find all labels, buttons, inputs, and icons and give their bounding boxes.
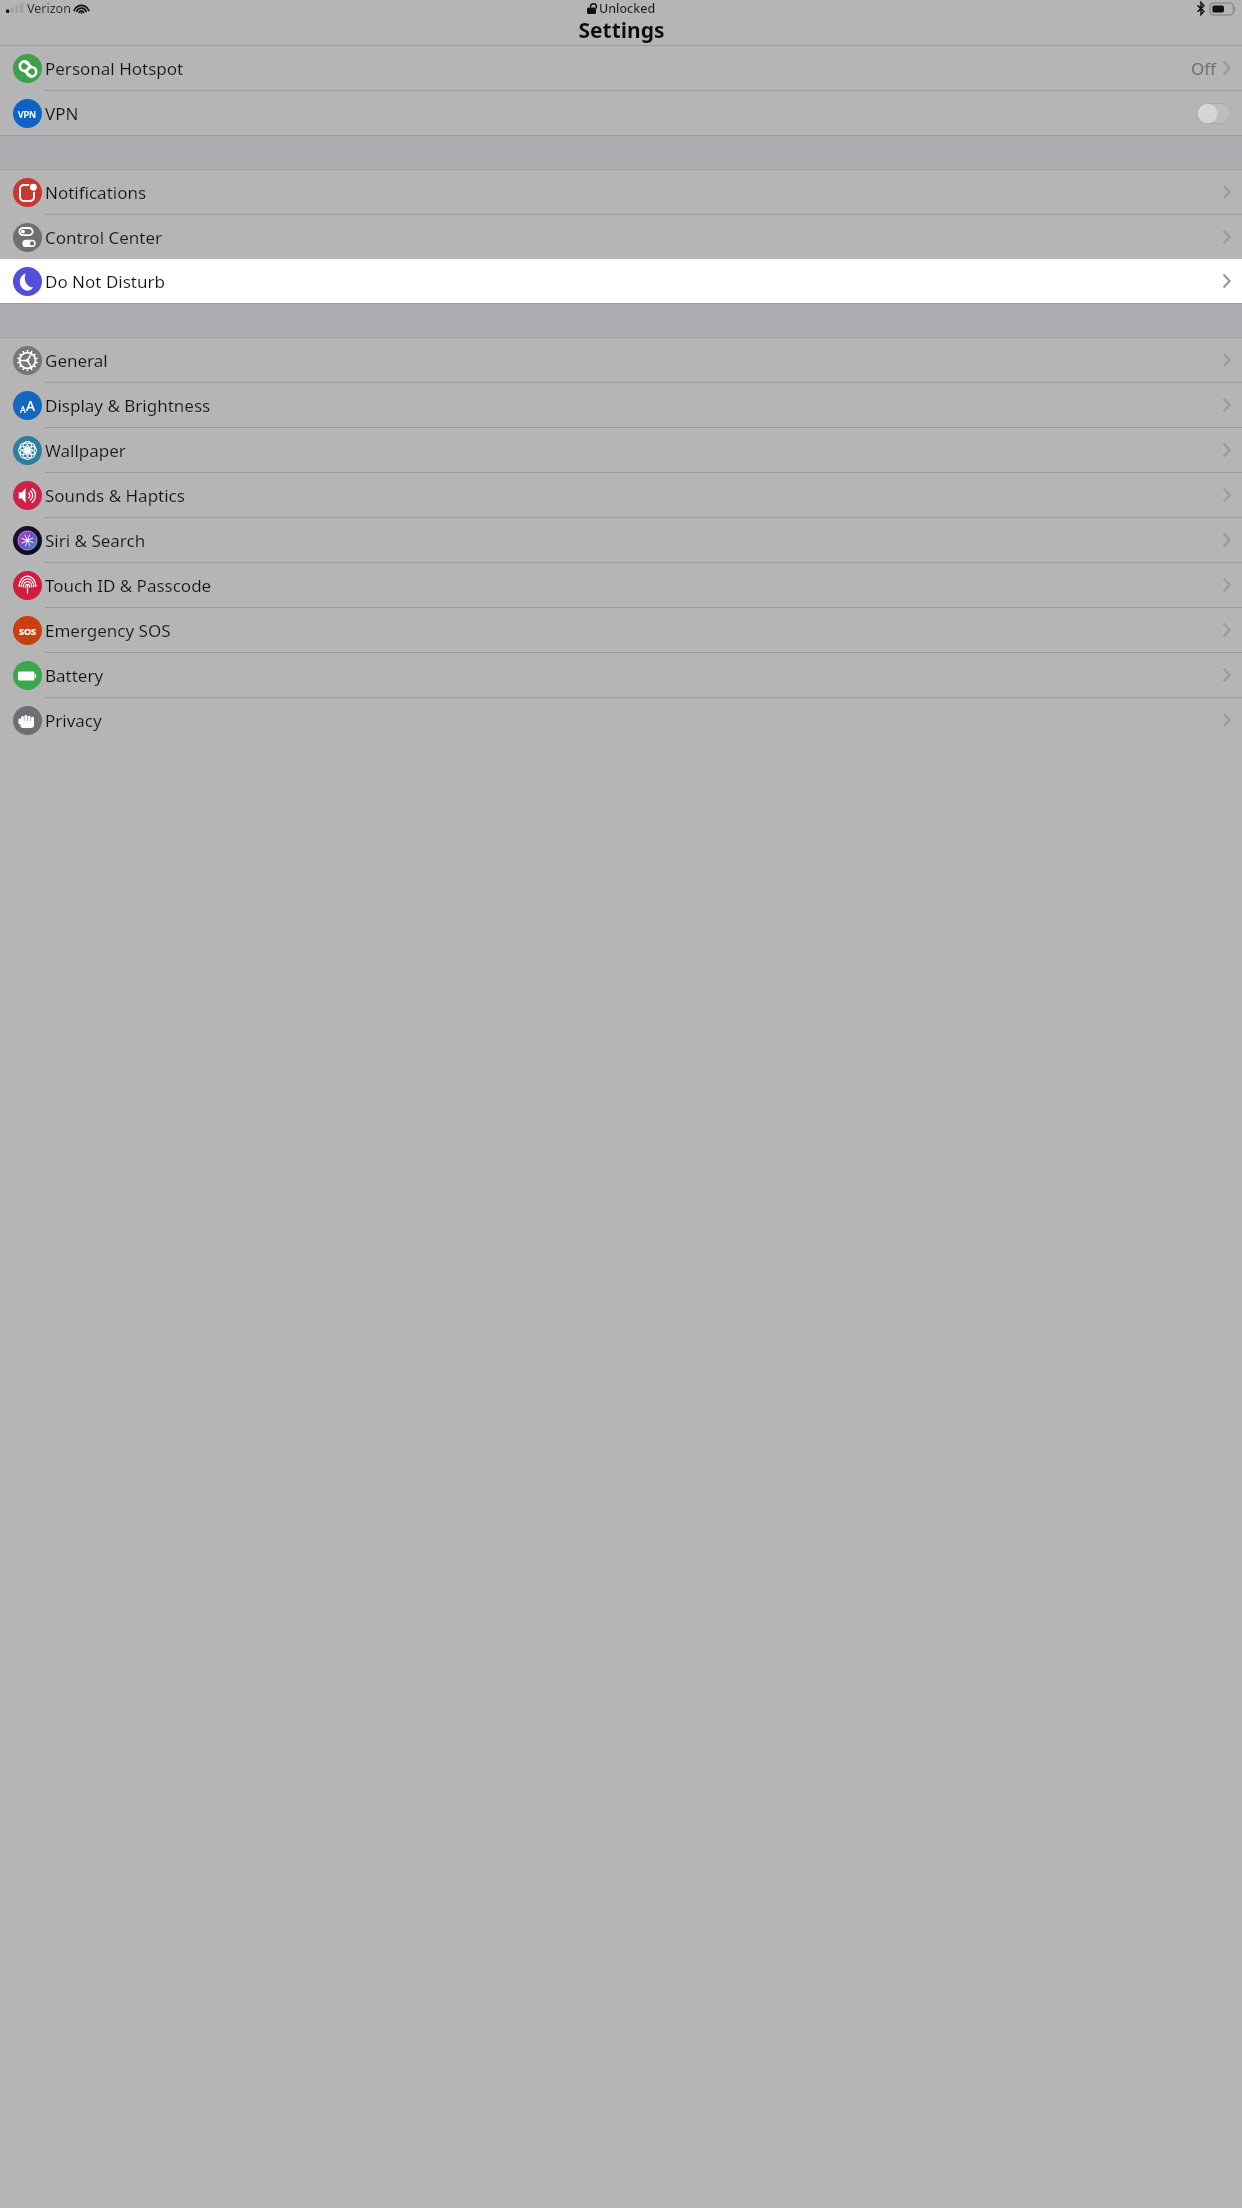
- staticText: A: [26, 396, 35, 415]
- button[interactable]: Battery: [0, 653, 1242, 697]
- staticText: Emergency SOS: [45, 619, 171, 642]
- button[interactable]: Touch ID & Passcode: [0, 563, 1242, 607]
- button[interactable]: Do Not Disturb: [0, 259, 1242, 303]
- staticText: VPN: [18, 108, 37, 120]
- staticText: Display & Brightness: [45, 394, 211, 417]
- staticText: Unlocked: [599, 0, 656, 16]
- staticText: Do Not Disturb: [45, 270, 165, 293]
- button[interactable]: Notifications: [0, 170, 1242, 214]
- staticText: Privacy: [45, 709, 102, 732]
- staticText: Verizon: [27, 0, 71, 16]
- staticText: Settings: [578, 16, 665, 45]
- staticText: VPN: [45, 102, 79, 125]
- staticText: Siri & Search: [45, 529, 146, 552]
- button[interactable]: Wallpaper: [0, 428, 1242, 472]
- button[interactable]: SOS: [0, 608, 1242, 652]
- staticText: A: [20, 403, 26, 415]
- button[interactable]: Siri & Search: [0, 518, 1242, 562]
- button[interactable]: A: [0, 383, 1242, 427]
- button[interactable]: VPN: [0, 91, 1242, 135]
- staticText: Battery: [45, 664, 104, 687]
- button[interactable]: General: [0, 338, 1242, 382]
- button[interactable]: Privacy: [0, 698, 1242, 742]
- button[interactable]: VPN toggle, off: [1197, 103, 1231, 124]
- button[interactable]: Personal Hotspot: [0, 46, 1242, 90]
- staticText: Wallpaper: [45, 439, 126, 462]
- staticText: Touch ID & Passcode: [45, 574, 212, 597]
- staticText: Control Center: [45, 226, 163, 249]
- staticText: Sounds & Haptics: [45, 484, 185, 507]
- staticText: General: [45, 349, 108, 372]
- staticText: Notifications: [45, 181, 147, 204]
- button[interactable]: Control Center: [0, 215, 1242, 259]
- staticText: Off: [1191, 57, 1216, 80]
- staticText: Personal Hotspot: [45, 57, 184, 80]
- staticText: SOS: [19, 625, 37, 637]
- button[interactable]: Sounds & Haptics: [0, 473, 1242, 517]
